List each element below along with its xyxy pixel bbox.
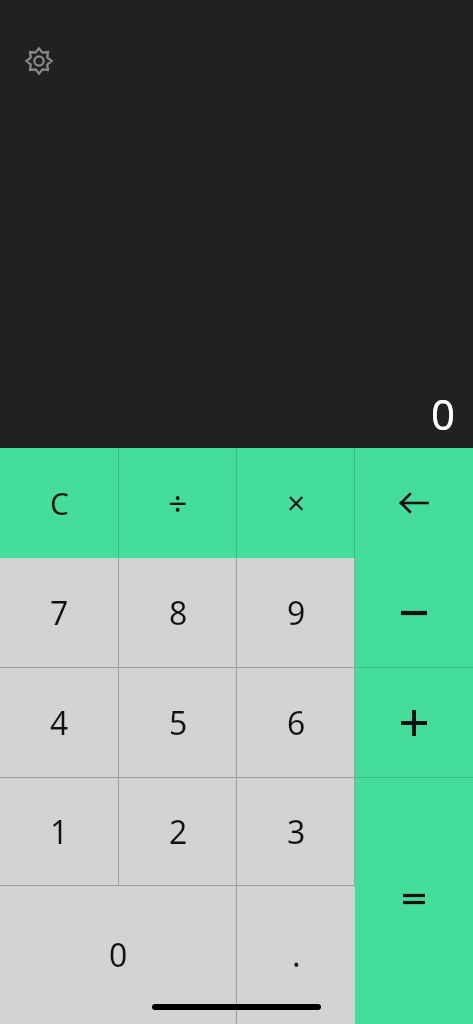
button[interactable]: Minus [355, 558, 473, 668]
staticText: 1 [50, 810, 69, 854]
staticText: . [292, 933, 301, 977]
staticText: 4 [50, 701, 69, 745]
staticText: 7 [50, 591, 69, 635]
button[interactable]: 5 [119, 668, 237, 778]
staticText: ÷ [168, 480, 188, 526]
button[interactable]: × [237, 448, 355, 558]
button[interactable]: Plus [355, 668, 473, 778]
staticText: 2 [169, 810, 188, 854]
button[interactable]: Backspace [355, 448, 473, 558]
staticText: 9 [287, 591, 306, 635]
button[interactable]: C [0, 448, 119, 558]
button[interactable]: 4 [0, 668, 119, 778]
button[interactable]: 9 [237, 558, 355, 668]
button[interactable]: 0 [0, 886, 237, 1024]
staticText: C [50, 483, 69, 524]
button[interactable]: 1 [0, 778, 119, 886]
button[interactable]: 6 [237, 668, 355, 778]
staticText: 8 [169, 591, 188, 635]
staticText: 0 [430, 385, 455, 442]
button[interactable]: 7 [0, 558, 119, 668]
staticText: × [287, 481, 306, 525]
button[interactable]: 3 [237, 778, 355, 886]
staticText: 6 [287, 701, 306, 745]
button[interactable]: Equals [355, 886, 473, 1024]
button[interactable]: . [237, 886, 355, 1024]
staticText: 3 [287, 810, 306, 854]
staticText: 5 [169, 701, 188, 745]
button[interactable]: 8 [119, 558, 237, 668]
button[interactable]: ÷ [119, 448, 237, 558]
button[interactable]: 2 [119, 778, 237, 886]
staticText: 0 [109, 933, 128, 977]
button[interactable]: Settings [14, 36, 64, 86]
